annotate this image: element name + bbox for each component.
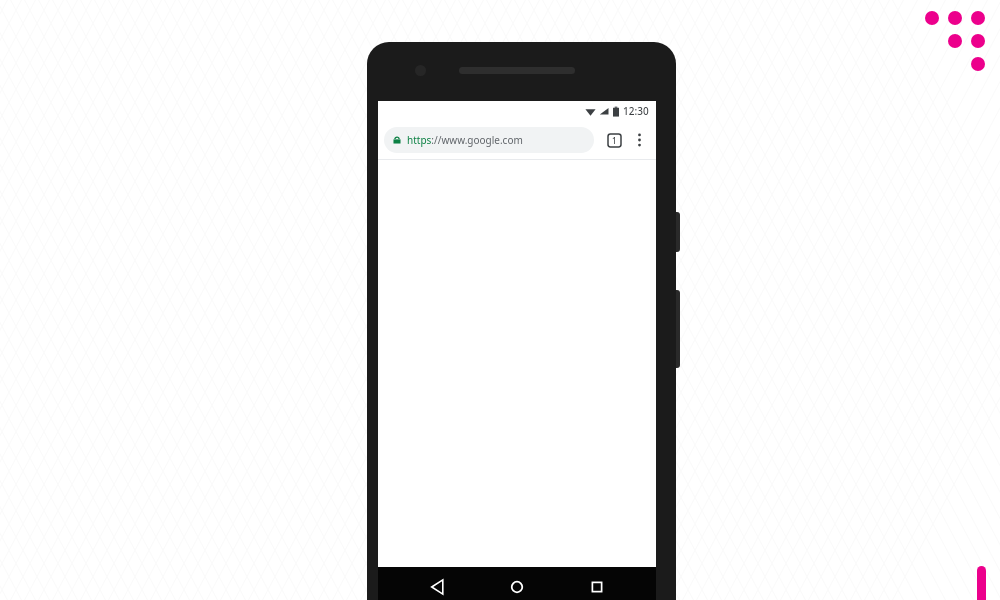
button[interactable]: Home: [497, 567, 537, 600]
button[interactable]: Back: [418, 567, 458, 600]
button[interactable]: Recent apps: [577, 567, 617, 600]
staticText: 1: [612, 135, 617, 146]
button[interactable]: https://www.google.com: [384, 127, 594, 153]
staticText: https://www.google.com: [407, 133, 523, 147]
button[interactable]: Tabs: [602, 128, 626, 152]
other: Logo: [920, 10, 992, 82]
button[interactable]: More options: [628, 129, 650, 151]
staticText: 12:30: [623, 104, 649, 118]
